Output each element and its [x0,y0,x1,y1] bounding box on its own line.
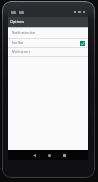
button[interactable] [32,153,37,158]
staticText: Options [10,19,25,24]
button[interactable]: Multi-term s [8,48,88,56]
button[interactable]: Notification bar [8,28,88,38]
staticText: Exit Bar [12,41,80,45]
staticText: Notification bar [12,31,88,35]
button[interactable]: Exit Bar [8,39,88,47]
button[interactable] [47,153,52,158]
staticText: Multi-term s [12,50,88,54]
button[interactable] [62,153,67,158]
